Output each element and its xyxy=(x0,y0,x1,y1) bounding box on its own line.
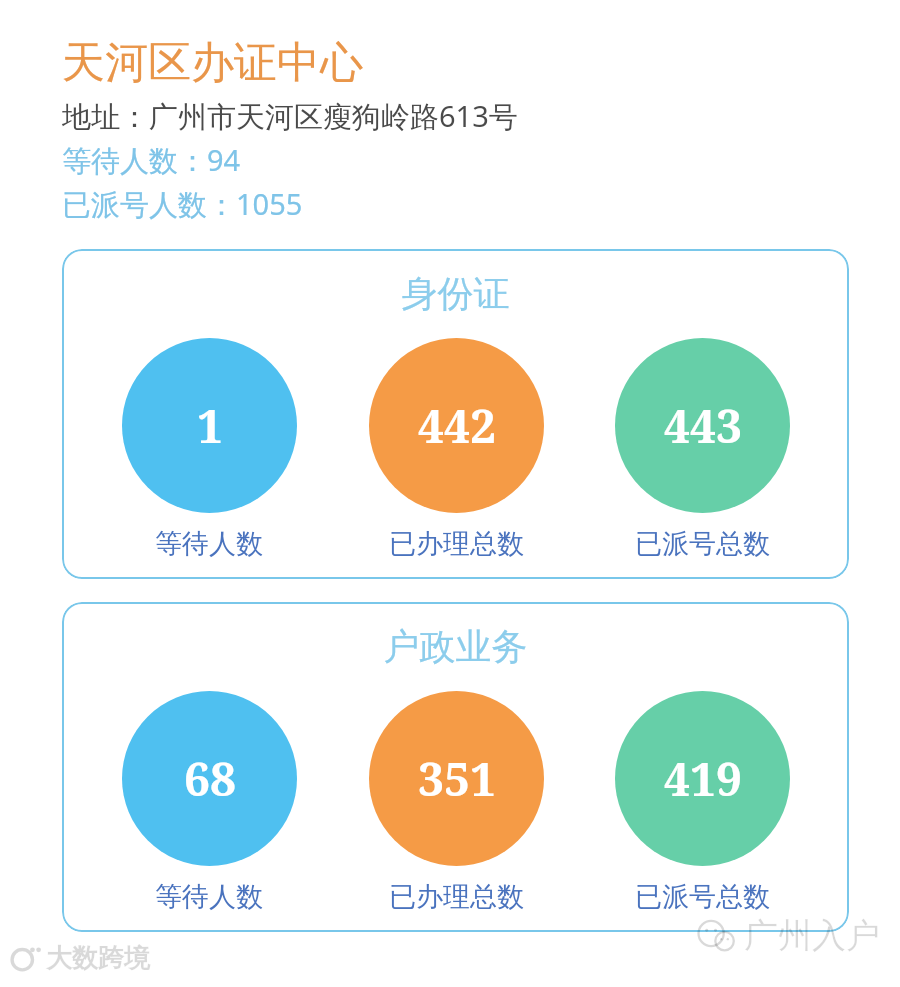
staticText: 身份证 xyxy=(62,271,849,316)
staticText: 等待人数：94 xyxy=(62,140,241,180)
staticText: 地址：广州市天河区瘦狗岭路613号 xyxy=(62,96,518,136)
staticText: 419 xyxy=(664,747,742,810)
staticText: 351 xyxy=(418,747,496,810)
other: 大数跨境 xyxy=(8,941,150,975)
button[interactable]: 户政业务 xyxy=(62,602,849,932)
staticText: 442 xyxy=(418,394,496,457)
staticText: 等待人数 xyxy=(155,527,263,561)
button[interactable]: 68 xyxy=(109,691,309,914)
staticText: 443 xyxy=(664,394,742,457)
button[interactable]: 1 xyxy=(109,338,309,561)
button[interactable]: 351 xyxy=(356,691,556,914)
staticText: 68 xyxy=(184,747,236,810)
staticText: 已派号总数 xyxy=(635,880,770,914)
staticText: 已派号总数 xyxy=(635,527,770,561)
staticText: 1 xyxy=(197,394,223,457)
staticText: 已办理总数 xyxy=(389,880,524,914)
staticText: 等待人数 xyxy=(155,880,263,914)
staticText: 天河区办证中心 xyxy=(62,36,363,90)
button[interactable]: 身份证 xyxy=(62,249,849,579)
staticText: 大数跨境 xyxy=(46,942,150,975)
button[interactable]: 442 xyxy=(356,338,556,561)
button[interactable]: 443 xyxy=(602,338,802,561)
staticText: 广州入户 xyxy=(744,914,880,957)
staticText: 户政业务 xyxy=(62,624,849,669)
staticText: 已办理总数 xyxy=(389,527,524,561)
other: 广州入户 xyxy=(696,914,880,957)
staticText: 已派号人数：1055 xyxy=(62,184,303,224)
button[interactable]: 419 xyxy=(602,691,802,914)
